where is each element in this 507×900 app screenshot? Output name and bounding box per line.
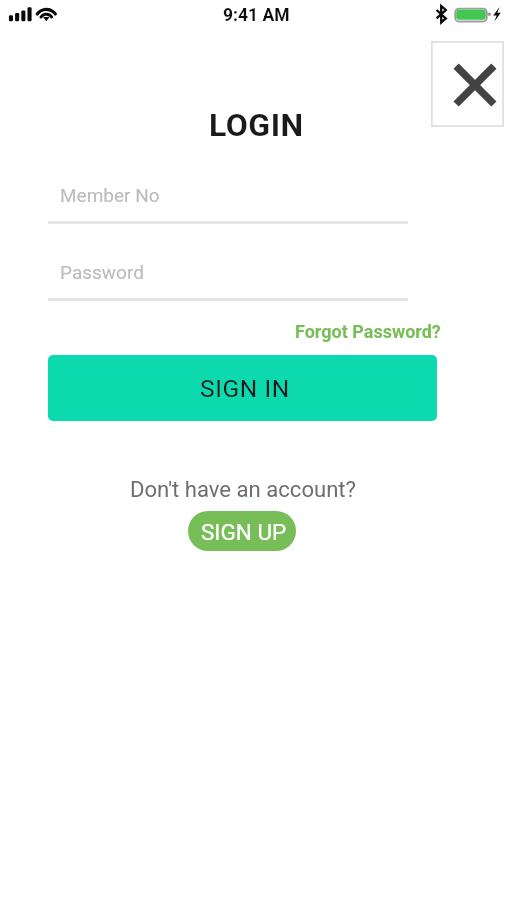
button[interactable]: SIGN IN — [48, 355, 437, 421]
staticText: Forgot Password? — [295, 321, 441, 342]
button[interactable]: Close — [431, 41, 504, 127]
button[interactable]: Member No — [48, 184, 408, 224]
staticText: SIGN UP — [201, 519, 287, 545]
staticText: Don't have an account? — [130, 476, 357, 502]
staticText: 9:41 AM — [223, 5, 290, 26]
staticText: SIGN IN — [200, 374, 290, 403]
staticText: LOGIN — [209, 106, 304, 144]
button[interactable]: SIGN UP — [188, 511, 296, 551]
button[interactable]: Password — [48, 261, 408, 301]
staticText: Password — [60, 261, 144, 283]
button[interactable]: Forgot Password? — [287, 318, 446, 344]
staticText: Member No — [60, 184, 160, 206]
